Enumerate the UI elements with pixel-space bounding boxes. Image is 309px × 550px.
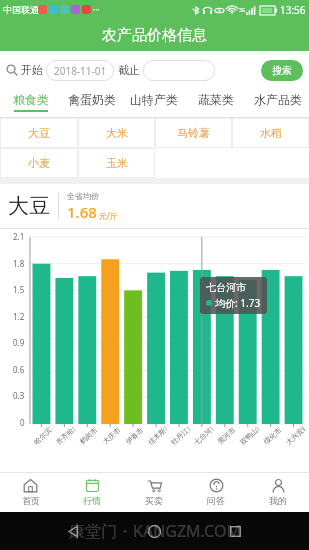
other: Home (147, 524, 162, 539)
staticText: 大豆 (8, 193, 50, 219)
staticText: 双鸭山市 (238, 425, 261, 447)
staticText: 大庆市 (101, 425, 122, 446)
staticText: 禽蛋奶类 (68, 92, 116, 107)
button[interactable]: 马铃薯 (155, 118, 232, 148)
button[interactable]: 问答 (185, 472, 247, 512)
button[interactable]: 搜索 (261, 60, 303, 81)
staticText: 马铃薯 (177, 126, 210, 140)
button[interactable]: 山特产类 (123, 89, 185, 117)
button[interactable]: 行情 (61, 472, 123, 512)
button[interactable]: 玉米 (78, 148, 155, 178)
other: Search (6, 64, 18, 76)
staticText: 截止 (118, 63, 140, 77)
staticText: 大兴安岭地区 (284, 425, 307, 447)
staticText: 1.8 (13, 258, 25, 269)
staticText: 鹤岗市 (78, 425, 99, 446)
staticText: 齐齐哈尔市 (54, 425, 77, 447)
staticText: 哈尔滨市 (32, 425, 54, 446)
staticText: 开始 (21, 63, 43, 77)
button[interactable]: 粮食类 (0, 89, 61, 117)
staticText: 0.6 (13, 364, 25, 375)
staticText: 牡丹江市 (169, 425, 192, 447)
staticText: 全省均价 (67, 191, 99, 201)
staticText: 七台河市 (206, 281, 246, 294)
staticText: 首页 (22, 495, 40, 506)
button[interactable]: 水产品类 (247, 89, 309, 117)
staticText: 均价: 1.73 (215, 296, 261, 310)
staticText: 黑河市 (216, 425, 237, 446)
staticText: 山特产类 (130, 92, 178, 107)
button[interactable]: 我的 (247, 472, 309, 512)
button[interactable]: 买卖 (123, 472, 185, 512)
button[interactable] (143, 60, 215, 81)
button[interactable]: 小麦 (0, 148, 78, 178)
staticText: 0.3 (13, 390, 25, 401)
button[interactable]: 首页 (0, 472, 61, 512)
staticText: 元/斤 (99, 210, 118, 221)
staticText: 蔬菜类 (198, 92, 234, 107)
staticText: 农产品价格信息 (102, 26, 207, 45)
other: Recents (228, 524, 243, 539)
staticText: 1.68 (67, 202, 97, 222)
staticText: 水产品类 (254, 92, 302, 107)
button[interactable]: 大米 (78, 118, 155, 148)
staticText: 大米 (106, 126, 128, 140)
staticText: 买卖 (145, 495, 163, 506)
staticText: 伊春市 (124, 425, 145, 446)
staticText: 2.1 (13, 231, 25, 242)
staticText: 2018-11-01 (54, 64, 107, 78)
staticText: 1.5 (13, 284, 25, 295)
staticText: 问答 (207, 495, 225, 506)
button[interactable]: 大豆 (0, 118, 78, 148)
staticText: 大豆 (28, 126, 50, 140)
staticText: 绥化市 (262, 425, 283, 446)
other: Back (66, 524, 81, 539)
staticText: 七台河市 (192, 425, 215, 447)
staticText: 玉米 (106, 156, 128, 170)
staticText: 3G (239, 7, 246, 14)
button[interactable]: 2018-11-01 (46, 60, 114, 81)
staticText: ··· (93, 4, 100, 15)
staticText: 我的 (269, 495, 287, 506)
staticText: 13:56 (280, 3, 306, 17)
button[interactable]: 水稻 (232, 118, 309, 148)
staticText: 搜索 (272, 64, 292, 77)
button[interactable]: 禽蛋奶类 (61, 89, 123, 117)
staticText: 康堂门・KANGZM.COM (69, 520, 241, 542)
staticText: 0.9 (13, 337, 25, 348)
staticText: 水稻 (260, 126, 282, 140)
button[interactable]: 蔬菜类 (185, 89, 247, 117)
staticText: 行情 (83, 495, 101, 506)
staticText: 小麦 (28, 156, 50, 170)
staticText: 0 (20, 417, 25, 428)
staticText: 中国联通 (3, 4, 39, 15)
staticText: 1.2 (13, 311, 25, 322)
staticText: 粮食类 (13, 92, 49, 107)
staticText: 佳木斯市 (146, 425, 169, 447)
